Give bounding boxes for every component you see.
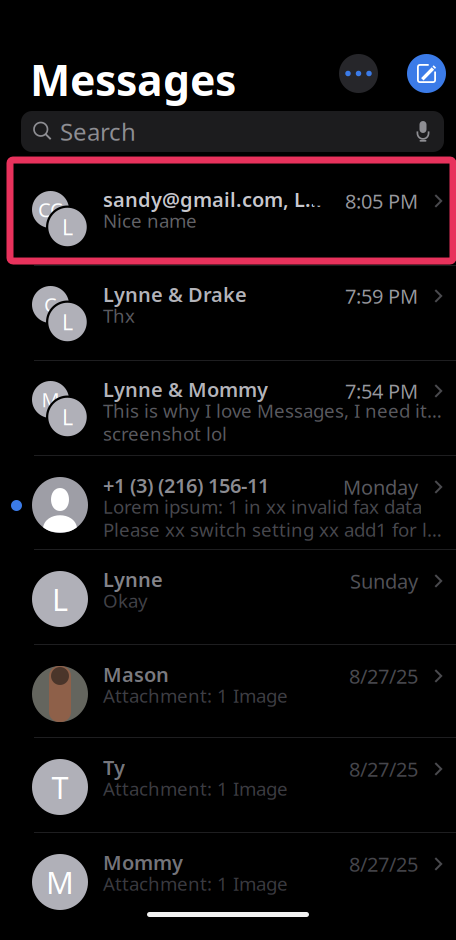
staticText: +1 (3) (216) 156-11 bbox=[103, 472, 269, 499]
staticText: L bbox=[62, 308, 73, 336]
button[interactable]: T bbox=[0, 738, 456, 833]
staticText: Ty bbox=[103, 754, 125, 781]
staticText: Search bbox=[60, 116, 136, 147]
staticText: C bbox=[44, 291, 57, 318]
staticText: Mason bbox=[103, 661, 169, 688]
staticText: sandy@gmail.com, L… bbox=[103, 186, 322, 213]
staticText: 7:54 PM bbox=[345, 378, 418, 404]
staticText: 7:59 PM bbox=[345, 283, 418, 309]
staticText: Mommy bbox=[103, 849, 183, 876]
button[interactable]: +1 (3) (216) 156-11 bbox=[0, 456, 456, 550]
staticText: Please xx switch setting xx add1 for log… bbox=[103, 517, 443, 542]
staticText: CC bbox=[38, 196, 63, 223]
staticText: Attachment: 1 Image bbox=[103, 871, 288, 896]
button[interactable]: L bbox=[0, 550, 456, 645]
staticText: L bbox=[62, 213, 73, 241]
staticText: L bbox=[52, 579, 68, 619]
button[interactable]: M bbox=[0, 361, 456, 456]
button[interactable]: More options bbox=[339, 54, 378, 93]
staticText: Lynne & Mommy bbox=[103, 376, 268, 403]
staticText: 8/27/25 bbox=[349, 851, 418, 877]
staticText: Thx bbox=[103, 303, 135, 328]
staticText: This is why I love Messages, I need it t… bbox=[103, 398, 443, 423]
staticText: Sunday bbox=[350, 568, 418, 594]
staticText: Lynne & Drake bbox=[103, 281, 247, 308]
staticText: T bbox=[51, 767, 68, 807]
button[interactable]: C bbox=[0, 266, 456, 361]
staticText: Nice name bbox=[103, 208, 197, 233]
staticText: Attachment: 1 Image bbox=[103, 776, 288, 801]
button[interactable]: Compose new message bbox=[407, 54, 446, 93]
staticText: Lynne bbox=[103, 566, 163, 593]
staticText: 8/27/25 bbox=[349, 756, 418, 782]
staticText: 8:05 PM bbox=[345, 188, 418, 214]
button[interactable]: Search bbox=[21, 111, 444, 152]
button[interactable]: CC bbox=[0, 171, 456, 266]
staticText: M bbox=[41, 386, 59, 413]
staticText: Monday bbox=[343, 474, 418, 500]
button[interactable]: M bbox=[0, 833, 456, 928]
staticText: Messages bbox=[30, 51, 236, 108]
staticText: 8/27/25 bbox=[349, 663, 418, 689]
staticText: Attachment: 1 Image bbox=[103, 683, 288, 708]
staticText: Lorem ipsum: 1 in xx invalid fax data bbox=[103, 494, 422, 519]
staticText: L bbox=[62, 403, 73, 431]
button[interactable]: Mason bbox=[0, 645, 456, 738]
staticText: Okay bbox=[103, 588, 148, 613]
staticText: M bbox=[46, 862, 74, 902]
staticText: screenshot lol bbox=[103, 421, 227, 446]
